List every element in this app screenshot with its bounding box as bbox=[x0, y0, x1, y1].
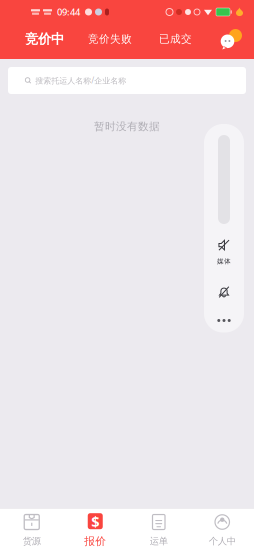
staticText: 搜索托运人名称/企业名称 bbox=[35, 75, 126, 86]
staticText: 09:44 bbox=[57, 6, 80, 18]
staticText: 媒体 bbox=[217, 257, 231, 265]
button[interactable]: 竞价失败 bbox=[67, 24, 135, 54]
button[interactable]: $ bbox=[63, 509, 127, 550]
staticText: 报价 bbox=[84, 535, 106, 548]
button[interactable]: 搜索托运人名称/企业名称 bbox=[8, 67, 246, 94]
button[interactable]: 个人中 bbox=[190, 509, 254, 550]
staticText: 已成交 bbox=[159, 32, 192, 45]
button[interactable]: 消息 bbox=[216, 26, 242, 52]
staticText: 竞价失败 bbox=[88, 32, 132, 45]
staticText: 暂时没有数据 bbox=[94, 120, 160, 133]
staticText: 个人中 bbox=[209, 535, 236, 547]
button[interactable]: 竞价中 bbox=[0, 24, 67, 54]
button[interactable]: 已成交 bbox=[135, 24, 195, 54]
staticText: 运单 bbox=[150, 535, 168, 547]
staticText: 竞价中 bbox=[25, 31, 64, 47]
staticText: $ bbox=[91, 511, 99, 531]
button[interactable]: 运单 bbox=[127, 509, 190, 550]
button[interactable]: 货源 bbox=[0, 509, 63, 550]
staticText: 货源 bbox=[23, 535, 41, 547]
